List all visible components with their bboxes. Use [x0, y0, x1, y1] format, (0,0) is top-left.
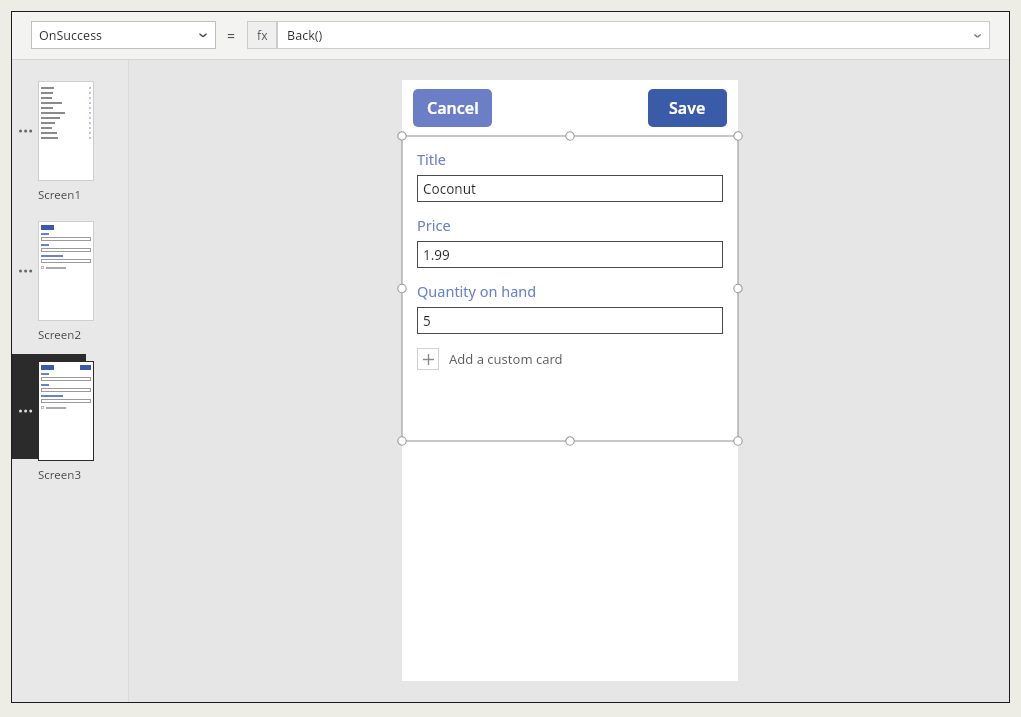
- button[interactable]: Cancel: [413, 89, 492, 127]
- button[interactable]: Insert function: [247, 21, 277, 49]
- staticText: Price: [417, 215, 451, 235]
- staticText: Title: [417, 149, 446, 169]
- button[interactable]: OnSuccess: [31, 21, 216, 49]
- button[interactable]: Title: [417, 149, 723, 202]
- staticText: Coconut: [423, 180, 476, 198]
- staticText: 5: [423, 312, 431, 330]
- button[interactable]: Screen2: [11, 218, 128, 343]
- button[interactable]: Back(): [277, 21, 990, 49]
- staticText: Screen1: [38, 187, 82, 203]
- staticText: fx: [257, 27, 268, 43]
- staticText: Back(): [287, 27, 973, 44]
- staticText: Quantity on hand: [417, 281, 537, 301]
- staticText: Save: [669, 97, 706, 119]
- staticText: 1.99: [423, 246, 450, 264]
- button[interactable]: Save: [648, 89, 727, 127]
- staticText: Screen2: [38, 327, 82, 343]
- button[interactable]: Add a custom card: [417, 348, 723, 370]
- staticText: Add a custom card: [449, 350, 563, 368]
- button[interactable]: Screen1: [11, 78, 128, 203]
- staticText: Screen3: [38, 467, 82, 483]
- button[interactable]: Screen3: [11, 358, 128, 483]
- button[interactable]: Price: [417, 215, 723, 268]
- staticText: Cancel: [427, 97, 479, 119]
- staticText: OnSuccess: [39, 27, 198, 44]
- button[interactable]: Quantity on hand: [417, 281, 723, 334]
- staticText: =: [227, 26, 236, 45]
